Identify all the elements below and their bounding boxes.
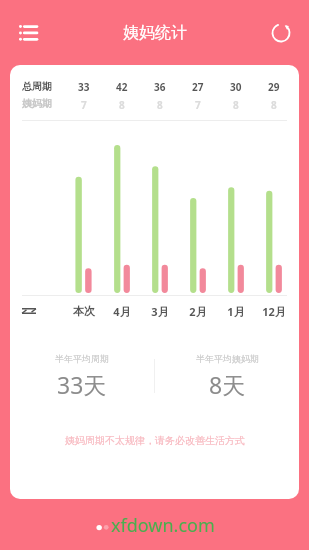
staticText: 8天 (209, 369, 246, 400)
staticText: 7 (195, 98, 201, 112)
staticText: 33天 (57, 369, 107, 400)
staticText: 本次 (73, 304, 95, 318)
staticText: xfdown.com (111, 513, 215, 538)
staticText: 总周期 (22, 80, 52, 93)
staticText: 27 (192, 80, 204, 94)
staticText: 半年平均周期 (55, 353, 109, 364)
staticText: 姨妈统计 (123, 23, 187, 43)
staticText: 2月 (189, 304, 207, 319)
staticText: 3月 (151, 304, 169, 319)
button[interactable]: 12月 (255, 304, 293, 319)
button[interactable]: 4月 (103, 304, 141, 319)
staticText: 8 (271, 98, 277, 112)
staticText: 7 (81, 98, 87, 112)
staticText: 12月 (262, 304, 286, 319)
staticText: 姨妈期 (22, 97, 52, 110)
staticText: 4月 (113, 304, 131, 319)
button[interactable]: 本次 (64, 304, 103, 318)
staticText: 42 (116, 80, 128, 94)
staticText: 姨妈周期不太规律，请务必改善生活方式 (65, 434, 245, 447)
button[interactable]: Refresh (261, 13, 301, 53)
button[interactable]: Swap (22, 298, 64, 324)
button[interactable]: 3月 (141, 304, 179, 319)
staticText: 33 (78, 80, 90, 94)
staticText: 30 (230, 80, 242, 94)
staticText: 36 (154, 80, 166, 94)
staticText: 29 (268, 80, 280, 94)
staticText: 8 (119, 98, 125, 112)
button[interactable]: 1月 (217, 304, 255, 319)
button[interactable]: Menu (8, 13, 48, 53)
button[interactable]: 2月 (179, 304, 217, 319)
staticText: 8 (157, 98, 163, 112)
staticText: 1月 (227, 304, 245, 319)
staticText: 8 (233, 98, 239, 112)
staticText: 半年平均姨妈期 (196, 353, 259, 364)
